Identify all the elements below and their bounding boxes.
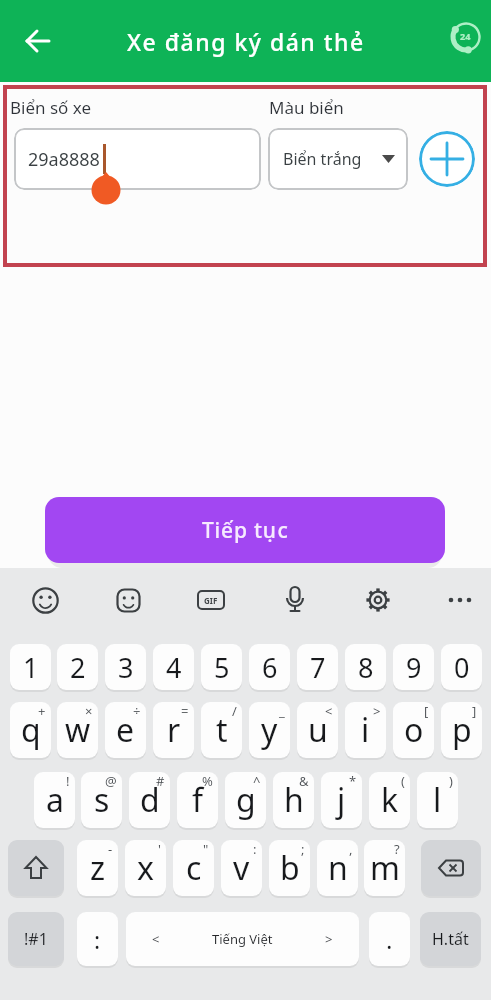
staticText: _ (279, 702, 285, 720)
button[interactable]: H.tất (420, 912, 481, 966)
button[interactable]: j (321, 772, 362, 828)
staticText: z (90, 846, 106, 890)
staticText: < (152, 930, 160, 948)
button[interactable]: f (177, 772, 218, 828)
button[interactable]: : (77, 912, 118, 966)
button[interactable] (23, 578, 67, 622)
staticText: p (452, 708, 472, 752)
button[interactable]: s (81, 772, 122, 828)
staticText: ! (66, 772, 70, 790)
staticText: [ (424, 702, 429, 720)
button[interactable]: t (201, 702, 242, 758)
button[interactable]: 8 (345, 644, 386, 690)
staticText: % (202, 772, 213, 790)
button[interactable] (14, 17, 62, 65)
staticText: 2 (70, 649, 86, 686)
staticText: > (325, 930, 333, 948)
staticText: ( (401, 772, 405, 790)
staticText: × (85, 702, 93, 720)
staticText: ] (472, 702, 477, 720)
button[interactable] (419, 131, 475, 187)
button[interactable]: k (369, 772, 410, 828)
button[interactable]: n (317, 840, 358, 896)
staticText: j (337, 778, 346, 822)
button[interactable]: 0 (441, 644, 482, 690)
button[interactable] (421, 840, 481, 896)
staticText: s (94, 778, 110, 822)
button[interactable]: Biển trắng (268, 128, 408, 190)
staticText: : (94, 924, 101, 955)
button[interactable]: 5 (201, 644, 242, 690)
button[interactable]: b (269, 840, 310, 896)
staticText: : (253, 840, 257, 858)
button[interactable]: p (441, 702, 482, 758)
staticText: / (232, 702, 237, 720)
button[interactable]: h (273, 772, 314, 828)
button[interactable] (438, 578, 482, 622)
button[interactable]: i (345, 702, 386, 758)
staticText: . (386, 923, 393, 956)
button[interactable]: 29a8888 (14, 128, 261, 190)
button[interactable]: c (173, 840, 214, 896)
staticText: a (46, 778, 64, 822)
staticText: ) (449, 772, 453, 790)
button[interactable] (273, 578, 317, 622)
staticText: Xe đăng ký dán thẻ (127, 26, 365, 57)
button[interactable] (106, 578, 150, 622)
button[interactable]: < (126, 912, 359, 966)
button[interactable] (356, 578, 400, 622)
staticText: 6 (262, 649, 278, 686)
button[interactable]: . (369, 912, 410, 966)
button[interactable]: l (417, 772, 458, 828)
staticText: d (140, 778, 160, 822)
staticText: 24 (460, 30, 471, 42)
staticText: > (373, 702, 381, 720)
button[interactable]: Tiếp tục (45, 497, 445, 563)
staticText: Tiếp tục (202, 516, 289, 545)
staticText: ' (158, 840, 161, 858)
button[interactable]: 1 (10, 644, 51, 690)
button[interactable]: g (225, 772, 266, 828)
staticText: h (284, 778, 304, 822)
button[interactable]: 4 (153, 644, 194, 690)
button[interactable]: y (249, 702, 290, 758)
button[interactable]: 6 (249, 644, 290, 690)
button[interactable]: GIF (189, 578, 233, 622)
button[interactable]: w (57, 702, 98, 758)
button[interactable]: a (34, 772, 75, 828)
staticText: t (216, 708, 228, 752)
staticText: n (328, 846, 348, 890)
button[interactable]: !#1 (8, 912, 64, 966)
button[interactable]: o (393, 702, 434, 758)
button[interactable]: d (129, 772, 170, 828)
staticText: Biển số xe (10, 96, 92, 119)
button[interactable]: r (153, 702, 194, 758)
button[interactable] (8, 840, 64, 896)
button[interactable]: u (297, 702, 338, 758)
button[interactable]: z (77, 840, 118, 896)
button[interactable]: 24 (432, 11, 488, 67)
staticText: i (361, 708, 370, 752)
button[interactable]: 9 (393, 644, 434, 690)
staticText: 7 (310, 649, 326, 686)
button[interactable]: q (10, 702, 51, 758)
staticText: GIF (204, 595, 218, 606)
staticText: m (370, 846, 400, 890)
button[interactable]: e (105, 702, 146, 758)
staticText: ; (301, 840, 305, 858)
staticText: , (349, 840, 353, 858)
staticText: q (21, 708, 41, 752)
button[interactable]: 2 (57, 644, 98, 690)
button[interactable]: 3 (105, 644, 146, 690)
staticText: 4 (166, 649, 182, 686)
staticText: k (381, 778, 399, 822)
button[interactable]: v (221, 840, 262, 896)
button[interactable]: x (125, 840, 166, 896)
staticText: # (156, 772, 165, 790)
staticText: ^ (253, 772, 261, 790)
button[interactable]: 7 (297, 644, 338, 690)
staticText: @ (105, 772, 117, 790)
staticText: 9 (406, 649, 422, 686)
button[interactable]: m (364, 840, 405, 896)
staticText: e (116, 708, 135, 752)
